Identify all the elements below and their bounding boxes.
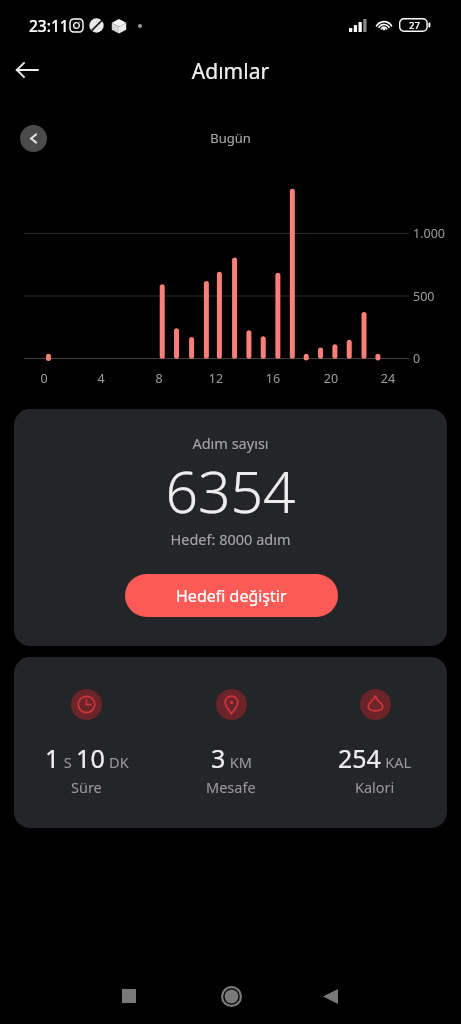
staticText: Hedefi değiştir: [176, 585, 287, 607]
staticText: Adım sayısı: [14, 433, 447, 453]
button[interactable]: Back: [306, 972, 354, 1020]
button[interactable]: 254 KAL: [303, 657, 447, 828]
staticText: 27: [409, 19, 420, 32]
staticText: 4: [86, 370, 116, 387]
staticText: Kalori: [355, 777, 395, 797]
staticText: Süre: [71, 777, 102, 797]
staticText: 6354: [14, 452, 447, 530]
staticText: 12: [201, 370, 231, 387]
staticText: Mesafe: [206, 777, 256, 797]
button[interactable]: Previous day: [20, 125, 47, 152]
staticText: 23:11: [29, 15, 69, 36]
button[interactable]: Hedefi değiştir: [125, 574, 338, 617]
staticText: 500: [413, 288, 435, 305]
staticText: Hedef: 8000 adım: [14, 529, 447, 549]
button[interactable]: 3 KM: [159, 657, 303, 828]
staticText: 24: [373, 370, 403, 387]
staticText: 1 S 10 DK: [45, 741, 129, 775]
button[interactable]: Back: [5, 48, 49, 92]
staticText: Adımlar: [0, 57, 461, 86]
staticText: 1.000: [413, 225, 445, 242]
button[interactable]: 1 S 10 DK: [14, 657, 159, 828]
button[interactable]: Home: [207, 972, 255, 1020]
staticText: 20: [316, 370, 346, 387]
staticText: 3 KM: [211, 741, 252, 775]
staticText: Bugün: [0, 129, 461, 147]
button[interactable]: Recent apps: [105, 972, 153, 1020]
staticText: 254 KAL: [338, 741, 412, 775]
staticText: 0: [413, 350, 421, 367]
staticText: 16: [258, 370, 288, 387]
staticText: 8: [144, 370, 174, 387]
staticText: 0: [29, 370, 59, 387]
